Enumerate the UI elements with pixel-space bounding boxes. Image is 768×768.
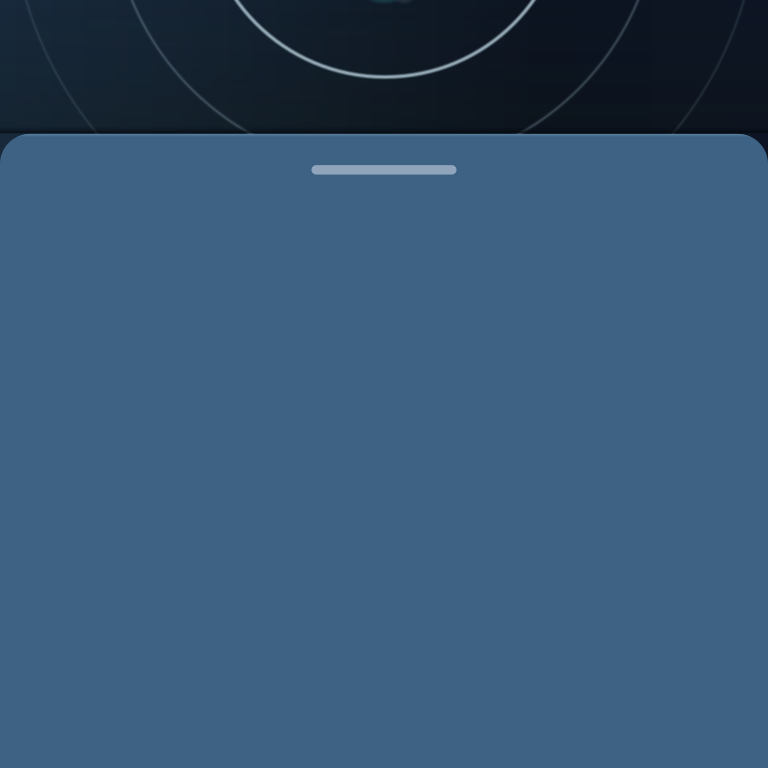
button[interactable]: Drag to resize sheet xyxy=(271,134,496,184)
